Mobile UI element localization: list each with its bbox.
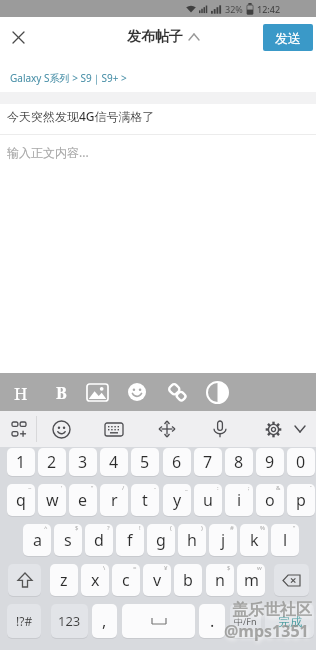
staticText: Galaxy S系列 > S9｜S9+ > — [10, 71, 127, 85]
button[interactable] — [290, 419, 310, 439]
button[interactable] — [6, 25, 30, 49]
button[interactable]: g — [147, 524, 175, 556]
button[interactable]: z — [50, 564, 78, 596]
button[interactable]: k — [240, 524, 268, 556]
button[interactable]: 9 — [256, 448, 284, 476]
button[interactable]: 1 — [7, 448, 35, 476]
staticText: 4 — [109, 451, 119, 473]
button[interactable]: 完成 — [265, 604, 314, 638]
button[interactable]: 发送 — [263, 24, 313, 51]
staticText: - — [154, 484, 156, 492]
staticText: 3 — [78, 451, 88, 473]
button[interactable]: 4 — [100, 448, 128, 476]
staticText: 6 — [172, 451, 182, 473]
staticText: = — [133, 564, 137, 572]
button[interactable]: 8 — [225, 448, 253, 476]
button[interactable]: B — [51, 382, 72, 403]
staticText: 发送 — [275, 30, 301, 46]
button[interactable] — [155, 417, 179, 441]
button[interactable]: . — [199, 604, 225, 638]
button[interactable] — [8, 564, 41, 596]
button[interactable] — [8, 418, 30, 440]
button[interactable]: a — [23, 524, 51, 556]
button[interactable] — [274, 564, 309, 596]
button[interactable]: 0 — [287, 448, 315, 476]
staticText: 8 — [234, 451, 244, 473]
button[interactable]: H — [10, 382, 31, 403]
button[interactable]: e — [69, 484, 97, 516]
button[interactable] — [164, 379, 190, 405]
button[interactable]: 今天突然发现4G信号满格了 — [0, 104, 316, 134]
button[interactable]: n — [206, 564, 234, 596]
staticText: s — [64, 529, 72, 551]
button[interactable]: c — [112, 564, 140, 596]
button[interactable] — [208, 417, 232, 441]
button[interactable]: t — [131, 484, 159, 516]
staticText: o — [265, 489, 275, 511]
staticText: $ — [227, 564, 231, 572]
button[interactable]: o — [256, 484, 284, 516]
staticText: 2 — [47, 451, 57, 473]
staticText: ! — [139, 524, 141, 532]
button[interactable]: s — [54, 524, 82, 556]
button[interactable]: 3 — [69, 448, 97, 476]
button[interactable]: w — [38, 484, 66, 516]
button[interactable]: x — [81, 564, 109, 596]
staticText: n — [215, 569, 225, 591]
button[interactable]: r — [100, 484, 128, 516]
staticText: b — [183, 569, 193, 591]
button[interactable]: 6 — [163, 448, 191, 476]
staticText: u — [203, 489, 213, 511]
button[interactable]: v — [143, 564, 171, 596]
staticText: !?# — [16, 613, 33, 629]
button[interactable]: j — [209, 524, 237, 556]
button[interactable]: p — [287, 484, 315, 516]
button[interactable]: b — [174, 564, 202, 596]
button[interactable] — [102, 417, 126, 441]
staticText: " — [91, 484, 94, 492]
staticText: k — [250, 529, 259, 551]
staticText: m — [244, 569, 259, 591]
button[interactable]: 输入正文内容... — [0, 135, 316, 373]
staticText: q — [16, 489, 26, 511]
button[interactable]: 2 — [38, 448, 66, 476]
button[interactable] — [124, 379, 150, 405]
staticText: , — [102, 610, 107, 632]
staticText: ? — [107, 524, 110, 532]
staticText: 今天突然发现4G信号满格了 — [7, 108, 155, 124]
button[interactable]: 123 — [51, 604, 88, 638]
staticText: 9 — [265, 451, 275, 473]
button[interactable] — [49, 417, 73, 441]
button[interactable]: Galaxy S系列 > S9｜S9+ > — [0, 57, 316, 92]
staticText: ; — [248, 484, 250, 492]
staticText: / — [122, 484, 125, 492]
staticText: c — [122, 569, 130, 591]
button[interactable]: 中/Fn — [230, 604, 261, 638]
staticText: : — [217, 484, 219, 492]
button[interactable] — [261, 417, 285, 441]
button[interactable]: f — [116, 524, 144, 556]
staticText: ^ — [44, 524, 48, 532]
button[interactable]: , — [92, 604, 117, 638]
staticText: f — [127, 529, 133, 551]
button[interactable]: h — [178, 524, 206, 556]
button[interactable]: u — [194, 484, 222, 516]
button[interactable] — [204, 379, 230, 405]
staticText: ) — [201, 524, 203, 532]
button[interactable]: y — [163, 484, 191, 516]
button[interactable]: d — [85, 524, 113, 556]
staticText: t — [142, 489, 148, 511]
button[interactable]: 7 — [194, 448, 222, 476]
button[interactable]: m — [237, 564, 265, 596]
button[interactable] — [122, 604, 195, 638]
staticText: r — [111, 489, 118, 511]
staticText: 输入正文内容... — [7, 144, 89, 160]
staticText: d — [94, 529, 104, 551]
staticText: " — [293, 524, 296, 532]
button[interactable]: l — [271, 524, 299, 556]
button[interactable]: 5 — [131, 448, 159, 476]
button[interactable]: !?# — [7, 604, 41, 638]
button[interactable]: q — [7, 484, 35, 516]
button[interactable] — [84, 379, 110, 405]
button[interactable]: i — [225, 484, 253, 516]
